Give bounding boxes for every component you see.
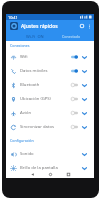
staticText: Datos móviles	[20, 68, 71, 74]
button[interactable]: More	[81, 54, 87, 60]
button[interactable]: More	[81, 68, 87, 74]
staticText: Sonido	[20, 151, 72, 157]
button[interactable]: Brillo de la pantalla	[6, 161, 94, 175]
button[interactable]: Quick settings app icon	[10, 22, 18, 30]
staticText: Ajustes rápidos	[21, 23, 78, 30]
button[interactable]: Sonido	[6, 147, 94, 161]
button[interactable]: Datos móviles	[6, 64, 94, 78]
button[interactable]: Ubicación (GPS)	[6, 92, 94, 106]
button[interactable]: More options	[86, 23, 92, 29]
button[interactable]: More	[81, 110, 87, 116]
button[interactable]: On	[71, 54, 78, 60]
button[interactable]: Off	[71, 124, 78, 130]
staticText: Ubicación (GPS)	[20, 96, 71, 102]
staticText: Wi-Fi ON	[26, 34, 44, 39]
button[interactable]: More	[81, 96, 87, 102]
button[interactable]: Bluetooth	[6, 78, 94, 92]
staticText: Avión	[20, 110, 71, 116]
button[interactable]: Off	[71, 110, 78, 116]
button[interactable]: Off	[71, 82, 78, 88]
button[interactable]: Recents	[65, 171, 72, 178]
button[interactable]: More	[81, 151, 87, 157]
staticText: Configuración	[10, 138, 34, 143]
button[interactable]: Avión	[6, 106, 94, 120]
button[interactable]: Wifi	[6, 50, 94, 64]
button[interactable]: More	[81, 82, 87, 88]
staticText: Sincronizar datos	[20, 124, 71, 130]
staticText: Brillo de la pantalla	[20, 165, 72, 171]
staticText: Conexiones	[10, 43, 30, 48]
button[interactable]: Settings	[78, 22, 86, 30]
button[interactable]: Back	[29, 171, 36, 178]
button[interactable]: Off	[71, 96, 78, 102]
staticText: Conectado	[62, 34, 81, 39]
button[interactable]: More	[81, 124, 87, 130]
staticText: Wifi	[20, 54, 71, 60]
button[interactable]: On	[71, 68, 78, 74]
staticText: Bluetooth	[20, 82, 71, 88]
staticText: 10:41	[8, 15, 18, 20]
button[interactable]: Home	[47, 171, 54, 178]
button[interactable]: More	[81, 165, 87, 171]
button[interactable]: Sincronizar datos	[6, 120, 94, 134]
